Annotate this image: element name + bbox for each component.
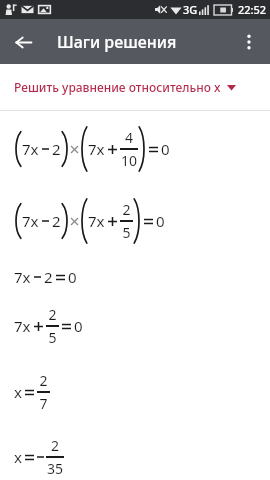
staticText: 4	[120, 128, 138, 147]
staticText: 5	[120, 223, 133, 242]
staticText: 2	[46, 305, 59, 324]
staticText: 7	[37, 394, 50, 413]
staticText: x	[14, 382, 22, 402]
staticText: 7x	[14, 316, 31, 336]
staticText: 7x	[14, 267, 31, 287]
staticText: 7x	[22, 139, 39, 159]
staticText: Шаги решения	[57, 31, 177, 53]
staticText: 10	[120, 151, 138, 170]
staticText: 2	[37, 371, 50, 390]
staticText: 22:52	[238, 2, 267, 17]
staticText: 0	[156, 211, 165, 231]
staticText: 5	[46, 328, 59, 347]
staticText: 2	[120, 200, 133, 219]
staticText: 7x	[22, 211, 39, 231]
button[interactable]: More options	[230, 23, 268, 61]
staticText: 0	[161, 139, 170, 159]
staticText: 2	[44, 267, 53, 287]
button[interactable]: Решить уравнение относительно x	[0, 64, 270, 110]
staticText: 2	[52, 139, 61, 159]
staticText: x	[14, 447, 22, 467]
staticText: 2	[52, 211, 61, 231]
staticText: Решить уравнение относительно x	[14, 79, 221, 95]
staticText: 7x	[88, 211, 105, 231]
staticText: 0	[68, 267, 77, 287]
staticText: 0	[74, 316, 83, 336]
staticText: 7x	[88, 139, 105, 159]
staticText: 2	[46, 436, 64, 455]
staticText: 35	[46, 459, 64, 478]
button[interactable]: Back	[4, 23, 42, 61]
staticText: 3G	[183, 2, 198, 17]
